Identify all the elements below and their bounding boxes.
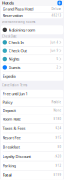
staticText: $180 [53, 117, 61, 121]
staticText: Check Out [9, 48, 27, 53]
staticText: Flexible [51, 100, 61, 104]
button[interactable]: Grand Plaza Hotel [1, 6, 63, 12]
staticText: 2 [56, 66, 58, 69]
staticText: Room Rate [3, 116, 21, 122]
staticText: Taxes & Fees [3, 126, 26, 131]
staticText: Jun 4 [50, 41, 58, 44]
button[interactable]: Policy [1, 98, 63, 106]
button[interactable]: Check Out [1, 47, 63, 55]
button[interactable]: Adjoining room [1, 25, 63, 34]
button[interactable]: Breakfast [1, 142, 63, 151]
staticText: Nights [9, 56, 20, 62]
button[interactable]: Total [1, 171, 63, 180]
staticText: $12 [55, 164, 61, 167]
staticText: 5 [56, 57, 58, 61]
button[interactable]: Check In [1, 38, 63, 46]
staticText: $199 [53, 173, 61, 177]
staticText: Loyalty Discount [3, 154, 31, 159]
staticText: None [53, 109, 61, 112]
button[interactable]: Resort Fee [1, 133, 63, 142]
button[interactable]: Nights [1, 55, 63, 63]
staticText: Interconnecting Rooms [2, 20, 35, 24]
staticText: $15 [55, 136, 61, 139]
button[interactable]: Free until Jun 1 [1, 90, 63, 98]
button[interactable]: Loyalty Discount [1, 152, 63, 161]
staticText: Free until Jun 1 [3, 91, 28, 96]
staticText: Total [3, 172, 12, 178]
staticText: 48213 [51, 14, 61, 17]
staticText: Resort Fee [3, 135, 21, 140]
staticText: Grand Plaza Hotel [3, 6, 34, 12]
button[interactable]: Deposit [1, 106, 63, 114]
staticText: Breakfast [3, 144, 20, 150]
staticText: Check Date [2, 35, 17, 38]
staticText: Expedia [3, 74, 16, 79]
button[interactable]: Expedia [1, 72, 63, 81]
button[interactable]: Taxes & Fees [1, 124, 63, 133]
staticText: Policy [3, 99, 13, 105]
staticText: -$20 [54, 155, 61, 158]
button[interactable]: Guests [1, 63, 63, 71]
staticText: Check In [9, 40, 24, 45]
staticText: $24 [55, 126, 61, 130]
button[interactable]: Room Rate [1, 114, 63, 123]
staticText: Parking [3, 163, 16, 168]
staticText: Deluxe [51, 7, 61, 11]
staticText: Deposit [3, 108, 16, 113]
staticText: Guests [9, 65, 21, 70]
staticText: Jun 9 [50, 49, 58, 52]
button[interactable]: Reservation [1, 12, 63, 18]
button[interactable]: Parking [1, 161, 63, 170]
staticText: Adjoining room [9, 27, 36, 32]
staticText: Reservation [3, 13, 23, 18]
staticText: Hotels [2, 0, 14, 6]
button[interactable]: Add [57, 1, 62, 5]
staticText: Cancellation Terms [2, 83, 27, 87]
staticText: $0 [57, 145, 61, 149]
